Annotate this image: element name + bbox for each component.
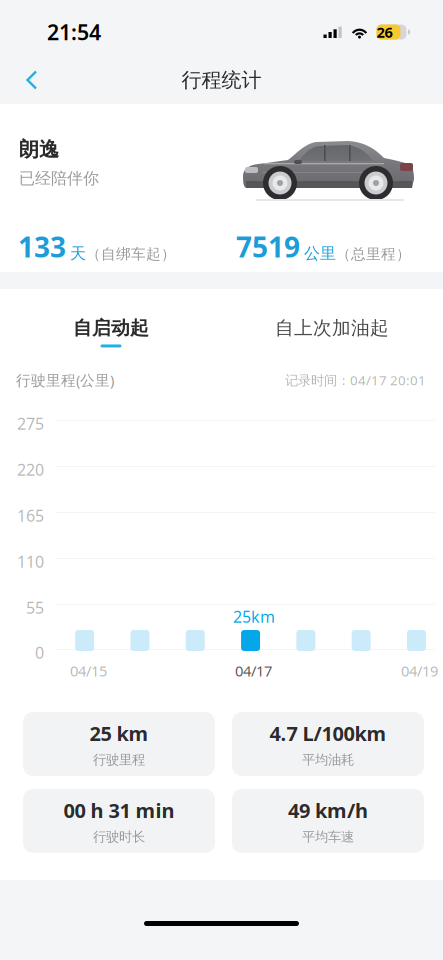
staticText: 行驶里程(公里) [16,370,114,390]
staticText: 0 [35,642,44,663]
staticText: 天 [70,243,86,263]
staticText: 26 [376,22,392,42]
staticText: 04/19 [401,661,438,680]
staticText: 平均油耗 [302,752,354,768]
staticText: 记录时间：04/17 20:01 [285,371,426,389]
staticText: 04/15 [70,661,107,680]
staticText: 行程统计 [181,68,261,92]
staticText: 165 [17,505,44,526]
button[interactable]: 25 km [23,712,215,776]
staticText: 25km [233,606,275,627]
staticText: 04/17 [235,661,272,680]
button[interactable]: 00 h 31 min [23,789,215,853]
staticText: 行驶里程 [93,752,145,768]
staticText: 00 h 31 min [63,797,174,824]
staticText: 7519 [236,228,300,265]
staticText: 133 [18,228,66,265]
button[interactable]: Back [0,54,64,106]
button[interactable]: 自上次加油起 [221,296,442,368]
button[interactable]: 49 km/h [232,789,424,853]
staticText: （自绑车起） [86,245,176,263]
staticText: 平均车速 [302,829,354,845]
staticText: 21:54 [47,18,101,46]
staticText: 4.7 L/100km [269,720,386,747]
staticText: 110 [17,551,44,572]
staticText: 25 km [89,720,148,747]
staticText: 自上次加油起 [275,316,389,339]
staticText: 49 km/h [288,797,368,824]
staticText: 行驶时长 [93,829,145,845]
staticText: 朗逸 [19,137,59,162]
staticText: 220 [17,459,44,480]
staticText: 275 [17,413,44,434]
staticText: （总里程） [336,245,411,263]
staticText: 已经陪伴你 [19,169,99,188]
staticText: 55 [26,597,44,618]
staticText: 自启动起 [73,316,149,339]
button[interactable]: 自启动起 [0,296,221,368]
button[interactable]: 4.7 L/100km [232,712,424,776]
staticText: 公里 [304,243,336,263]
